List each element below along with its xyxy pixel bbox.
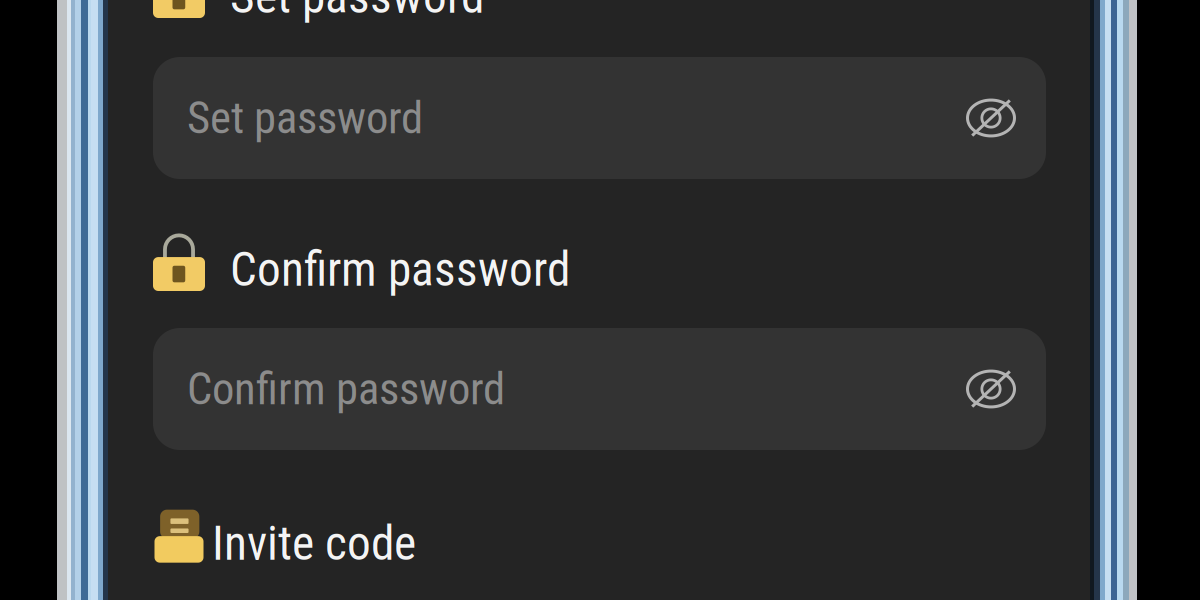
staticText: Set password [230, 0, 484, 24]
button[interactable]: Show Set password [955, 78, 1027, 158]
button[interactable]: Show Confirm password [955, 349, 1027, 429]
staticText: Set password [187, 92, 423, 144]
staticText: Invite code [212, 516, 416, 571]
staticText: Confirm password [230, 242, 570, 297]
staticText: Confirm password [187, 363, 505, 415]
